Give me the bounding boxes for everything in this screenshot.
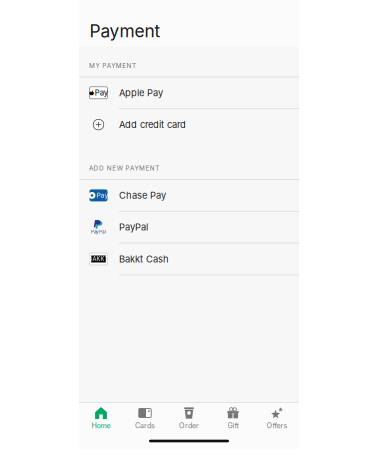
button[interactable]: Pay <box>79 77 299 108</box>
staticText: Offers <box>266 421 287 430</box>
staticText: Pay <box>96 191 108 199</box>
button[interactable]: Gift <box>211 407 255 433</box>
staticText: ADD NEW PAYMENT <box>89 164 159 172</box>
button[interactable]: Cards <box>123 407 167 433</box>
staticText: Home <box>91 421 110 430</box>
button[interactable]: PayPal <box>79 212 299 243</box>
button[interactable]: Add credit card <box>79 109 299 140</box>
button[interactable]: Home <box>79 407 123 433</box>
staticText: Add credit card <box>119 119 186 130</box>
staticText: PayPal <box>119 222 148 233</box>
staticText: Chase Pay <box>119 190 166 201</box>
button[interactable]: BAKKT <box>79 243 299 274</box>
button[interactable]: Pay <box>79 180 299 211</box>
staticText: Gift <box>227 421 238 430</box>
staticText: MY PAYMENT <box>89 62 136 69</box>
staticText: PayPal <box>91 229 106 235</box>
staticText: Order <box>179 421 199 430</box>
staticText: Apple Pay <box>119 87 163 98</box>
staticText: BAKKT <box>88 256 109 262</box>
button[interactable]: Order <box>167 407 211 433</box>
staticText: Payment <box>89 20 160 41</box>
staticText: Pay <box>95 88 108 97</box>
staticText: Cards <box>135 421 155 430</box>
button[interactable]: Offers <box>255 407 299 433</box>
staticText: Bakkt Cash <box>119 253 169 265</box>
